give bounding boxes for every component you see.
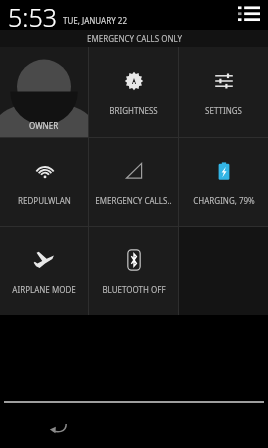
button[interactable]: CHARGING, 79% <box>179 138 268 226</box>
button[interactable]: SETTINGS <box>179 47 268 137</box>
button[interactable]: OWNER <box>0 47 88 137</box>
button[interactable]: BLUETOOTH OFF <box>89 227 178 315</box>
staticText: TUE, JANUARY 22 <box>63 15 127 26</box>
staticText: BLUETOOTH OFF <box>102 284 166 295</box>
staticText: BRIGHTNESS <box>109 105 158 116</box>
staticText: CHARGING, 79% <box>193 195 255 206</box>
staticText: AIRPLANE MODE <box>12 284 76 295</box>
staticText: OWNER <box>29 120 59 131</box>
staticText: EMERGENCY CALLS ONLY <box>87 33 182 44</box>
staticText: REDPULWLAN <box>18 195 71 206</box>
staticText: EMERGENCY CALLS.. <box>95 195 172 206</box>
button[interactable]: Notifications list <box>238 4 260 26</box>
staticText: 5:53 <box>8 0 57 30</box>
button[interactable]: REDPULWLAN <box>0 138 88 226</box>
button[interactable]: BRIGHTNESS <box>89 47 178 137</box>
button[interactable]: Back <box>42 411 76 445</box>
button[interactable]: EMERGENCY CALLS.. <box>89 138 178 226</box>
staticText: SETTINGS <box>205 105 242 116</box>
button[interactable]: AIRPLANE MODE <box>0 227 88 315</box>
